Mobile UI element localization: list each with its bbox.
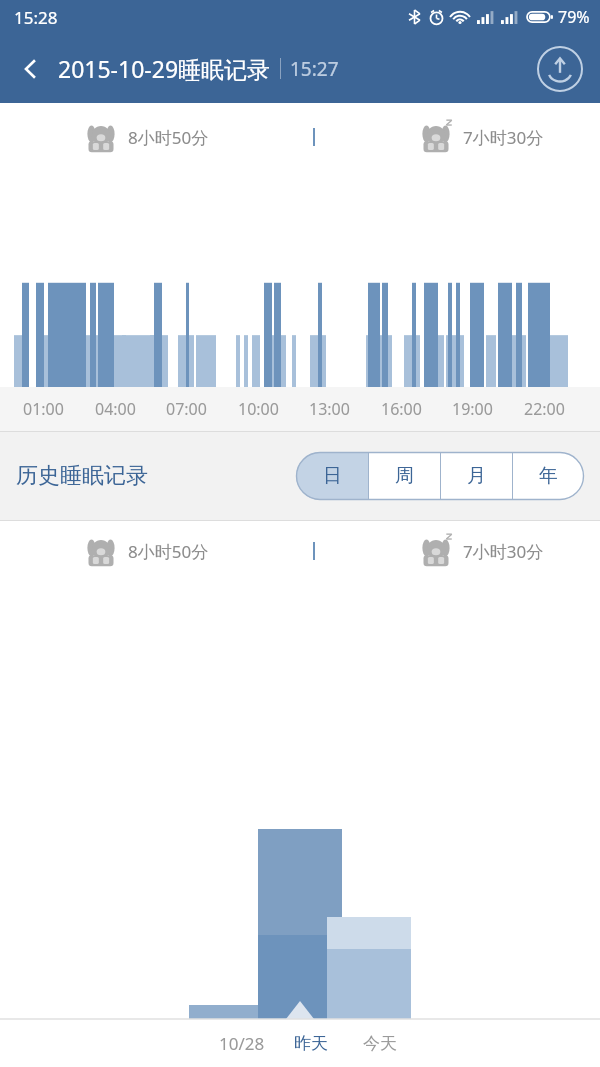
button[interactable]: 周	[369, 452, 440, 500]
staticText: 15:28	[14, 6, 58, 29]
staticText: 19:00	[452, 398, 493, 420]
button[interactable]: 年	[513, 452, 584, 500]
staticText: 01:00	[23, 398, 64, 420]
staticText: 04:00	[95, 398, 136, 420]
staticText: 日	[323, 464, 342, 488]
button[interactable]: Back	[8, 46, 54, 92]
staticText: 历史睡眠记录	[16, 462, 148, 490]
staticText: 8小时50分	[128, 540, 209, 563]
staticText: 8小时50分	[128, 126, 209, 149]
button[interactable]: 月	[441, 452, 512, 500]
staticText: 周	[395, 464, 414, 488]
staticText: 昨天	[294, 1033, 328, 1054]
staticText: 07:00	[166, 398, 207, 420]
staticText: 16:00	[381, 398, 422, 420]
staticText: 22:00	[524, 398, 565, 420]
button[interactable]: 日	[296, 452, 368, 500]
button[interactable]: Share	[536, 45, 584, 93]
staticText: 今天	[363, 1033, 397, 1054]
staticText: 7小时30分	[463, 126, 544, 149]
staticText: 10:00	[238, 398, 279, 420]
staticText: 2015-10-29睡眠记录	[58, 53, 271, 84]
staticText: 79%	[558, 6, 590, 28]
staticText: 年	[539, 464, 558, 488]
staticText: 13:00	[309, 398, 350, 420]
staticText: 7小时30分	[463, 540, 544, 563]
staticText: 15:27	[290, 56, 339, 82]
staticText: 月	[467, 464, 486, 488]
staticText: 10/28	[219, 1032, 265, 1055]
